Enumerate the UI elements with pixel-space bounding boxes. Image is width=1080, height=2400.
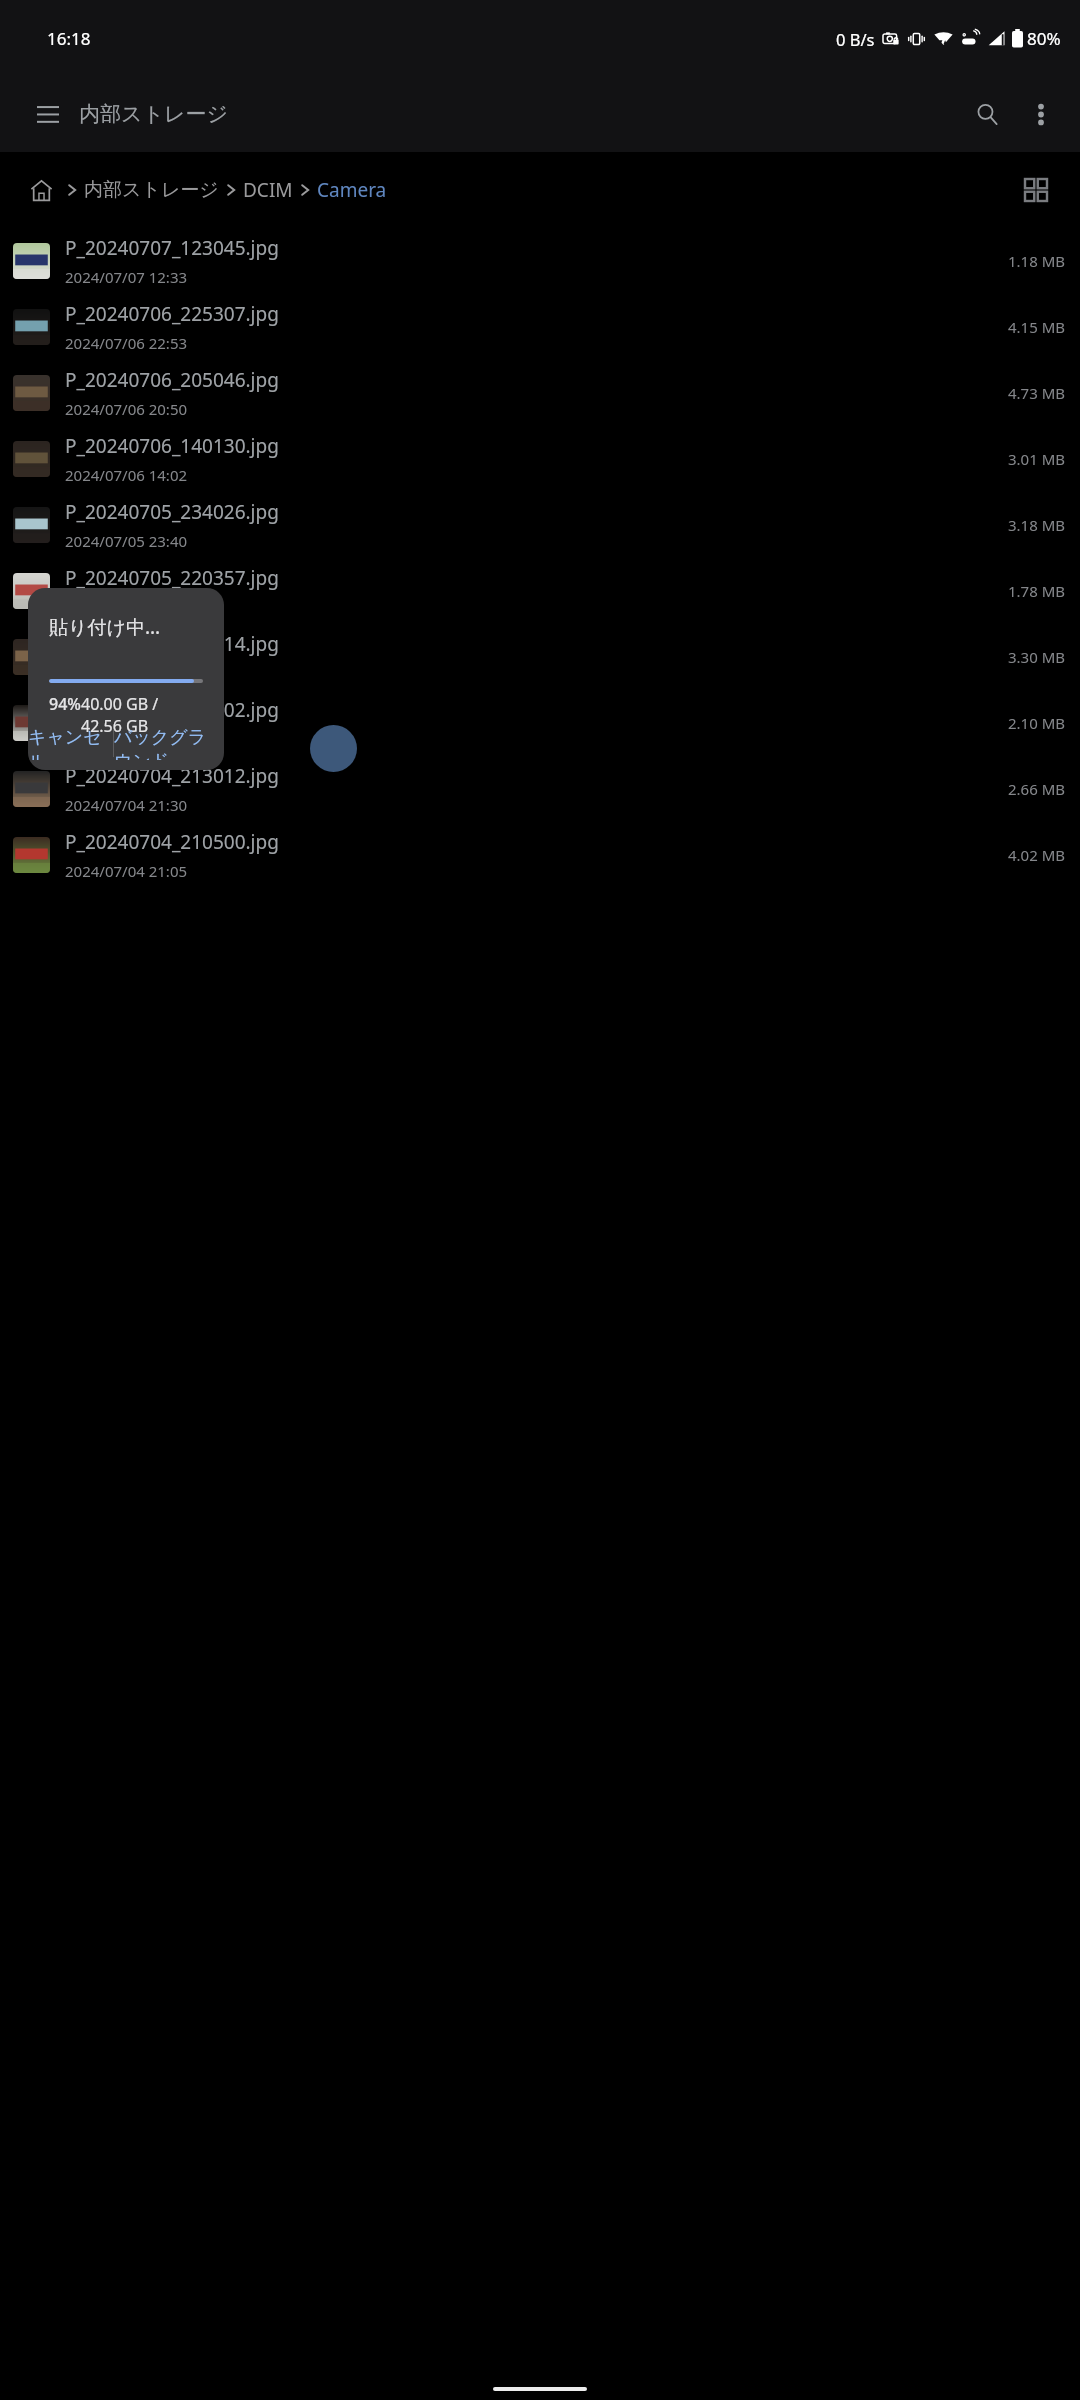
button[interactable]: New xyxy=(310,725,357,772)
button[interactable]: Camera xyxy=(315,177,389,203)
staticText: P_20240706_140130.jpg xyxy=(65,433,279,459)
staticText: P_20240705_121002.jpg xyxy=(65,697,279,723)
staticText: 2024/07/05 12:10 xyxy=(65,729,188,749)
button[interactable]: バックグラウンド xyxy=(114,726,224,760)
button[interactable]: P_20240705_205614.jpg xyxy=(0,624,1080,690)
staticText: 1.78 MB xyxy=(1008,581,1066,601)
staticText: 2024/07/05 20:57 xyxy=(65,663,188,683)
staticText: 3.01 MB xyxy=(1008,449,1066,469)
button[interactable]: DCIM xyxy=(241,177,295,203)
staticText: P_20240706_205046.jpg xyxy=(65,367,279,393)
staticText: P_20240704_213012.jpg xyxy=(65,763,279,789)
staticText: 2.10 MB xyxy=(1008,713,1066,733)
staticText: 16:18 xyxy=(47,27,91,50)
button[interactable]: Search xyxy=(960,87,1014,141)
staticText: バックグラウンド xyxy=(114,726,224,760)
staticText: P_20240707_123045.jpg xyxy=(65,235,279,261)
button[interactable]: P_20240704_210500.jpg xyxy=(0,822,1080,888)
staticText: 1.18 MB xyxy=(1008,251,1066,271)
staticText: Camera xyxy=(317,177,387,203)
staticText: 2024/07/07 12:33 xyxy=(65,267,188,287)
staticText: 2024/07/06 14:02 xyxy=(65,465,188,485)
button[interactable]: P_20240705_121002.jpg xyxy=(0,690,1080,756)
staticText: 0 B/s xyxy=(836,28,875,50)
staticText: 2024/07/06 20:50 xyxy=(65,399,188,419)
button[interactable]: P_20240706_205046.jpg xyxy=(0,360,1080,426)
staticText: 2024/07/06 22:53 xyxy=(65,333,188,353)
button[interactable]: P_20240705_234026.jpg xyxy=(0,492,1080,558)
staticText: P_20240705_234026.jpg xyxy=(65,499,279,525)
staticText: 内部ストレージ xyxy=(79,101,228,127)
staticText: 2.66 MB xyxy=(1008,779,1066,799)
staticText: 94% xyxy=(49,693,81,715)
staticText: 貼り付け中... xyxy=(49,614,161,640)
staticText: 2024/07/04 21:30 xyxy=(65,795,188,815)
staticText: 40.00 GB / 42.56 GB xyxy=(81,693,203,737)
button[interactable]: P_20240704_213012.jpg xyxy=(0,756,1080,822)
staticText: DCIM xyxy=(243,177,293,203)
button[interactable]: P_20240706_140130.jpg xyxy=(0,426,1080,492)
staticText: 4.73 MB xyxy=(1008,383,1066,403)
staticText: 4.15 MB xyxy=(1008,317,1066,337)
button[interactable]: P_20240706_225307.jpg xyxy=(0,294,1080,360)
staticText: P_20240704_210500.jpg xyxy=(65,829,279,855)
staticText: 4.02 MB xyxy=(1008,845,1066,865)
staticText: 2024/07/05 23:40 xyxy=(65,531,188,551)
button[interactable]: Home xyxy=(20,169,62,211)
button[interactable]: More options xyxy=(1014,87,1068,141)
button[interactable]: Menu xyxy=(20,86,76,142)
staticText: P_20240705_205614.jpg xyxy=(65,631,279,657)
staticText: キャンセル xyxy=(28,726,113,760)
staticText: P_20240705_220357.jpg xyxy=(65,565,279,591)
button[interactable]: P_20240707_123045.jpg xyxy=(0,228,1080,294)
button[interactable]: P_20240705_220357.jpg xyxy=(0,558,1080,624)
staticText: 80% xyxy=(1027,27,1061,50)
staticText: 内部ストレージ xyxy=(84,178,219,202)
button[interactable]: キャンセル xyxy=(28,726,113,760)
staticText: P_20240706_225307.jpg xyxy=(65,301,279,327)
button[interactable]: Grid view xyxy=(1014,168,1058,212)
staticText: 2024/07/04 21:05 xyxy=(65,861,188,881)
button[interactable]: 内部ストレージ xyxy=(82,178,221,202)
staticText: 3.30 MB xyxy=(1008,647,1066,667)
staticText: 3.18 MB xyxy=(1008,515,1066,535)
